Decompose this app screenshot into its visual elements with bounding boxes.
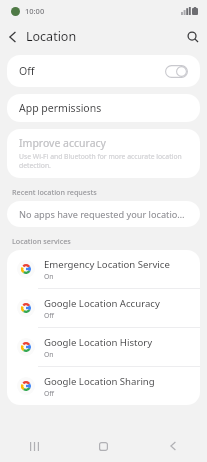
button[interactable]: Home <box>69 430 138 462</box>
staticText: On <box>44 272 54 281</box>
button[interactable]: Improve accuracy <box>7 129 200 178</box>
staticText: Improve accuracy <box>19 136 106 150</box>
button[interactable]: Back <box>0 27 20 47</box>
button[interactable]: Emergency Location Service <box>7 250 200 288</box>
button[interactable]: Back <box>138 430 207 462</box>
button[interactable]: Google Location Sharing <box>7 367 200 405</box>
staticText: Google Location History <box>44 336 153 349</box>
button[interactable]: App permissions <box>7 94 200 122</box>
button[interactable]: Recents <box>0 430 69 462</box>
button[interactable]: Search <box>181 26 207 48</box>
staticText: On <box>44 350 54 359</box>
staticText: Google Location Accuracy <box>44 297 160 310</box>
other: Location toggle, off <box>165 65 188 78</box>
staticText: Off <box>44 389 54 398</box>
staticText: No apps have requested your location r.. <box>19 208 188 221</box>
staticText: Location <box>26 28 77 45</box>
button[interactable]: Google Location Accuracy <box>7 289 200 327</box>
staticText: Off <box>44 311 54 320</box>
staticText: 10:00 <box>25 6 45 16</box>
staticText: Emergency Location Service <box>44 258 170 271</box>
staticText: App permissions <box>19 101 102 115</box>
staticText: Google Location Sharing <box>44 375 155 388</box>
button[interactable]: Off <box>7 55 200 87</box>
button[interactable]: Google Location History <box>7 328 200 366</box>
staticText: Use Wi-Fi and Bluetooth for more accurat… <box>19 152 188 170</box>
staticText: Off <box>19 64 35 78</box>
staticText: Recent location requests <box>12 187 97 197</box>
staticText: Location services <box>12 236 71 246</box>
